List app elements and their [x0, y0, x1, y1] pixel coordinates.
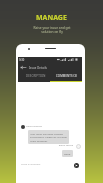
staticText: COMMENTS (3)	[56, 74, 78, 78]
button[interactable]: Send	[74, 163, 79, 168]
staticText: 9:30	[19, 58, 25, 62]
staticText: Rahul Verma	[18, 143, 73, 146]
staticText: Raise your issue and get	[33, 26, 71, 30]
button[interactable]: Back	[21, 65, 26, 70]
staticText: Good	[64, 152, 71, 155]
staticText: Your issue has been created successfully…	[30, 132, 67, 142]
button[interactable]: COMMENTS (3)	[51, 73, 82, 79]
button[interactable]: DESCRIPTION	[21, 73, 51, 79]
staticText: Write a comment	[21, 162, 41, 165]
staticText: Issue Details	[29, 66, 47, 70]
staticText: Tanya Sharma	[26, 124, 42, 127]
staticText: solution on fly	[41, 30, 63, 34]
staticText: MANAGE	[36, 13, 67, 23]
staticText: DESCRIPTION	[26, 74, 46, 78]
